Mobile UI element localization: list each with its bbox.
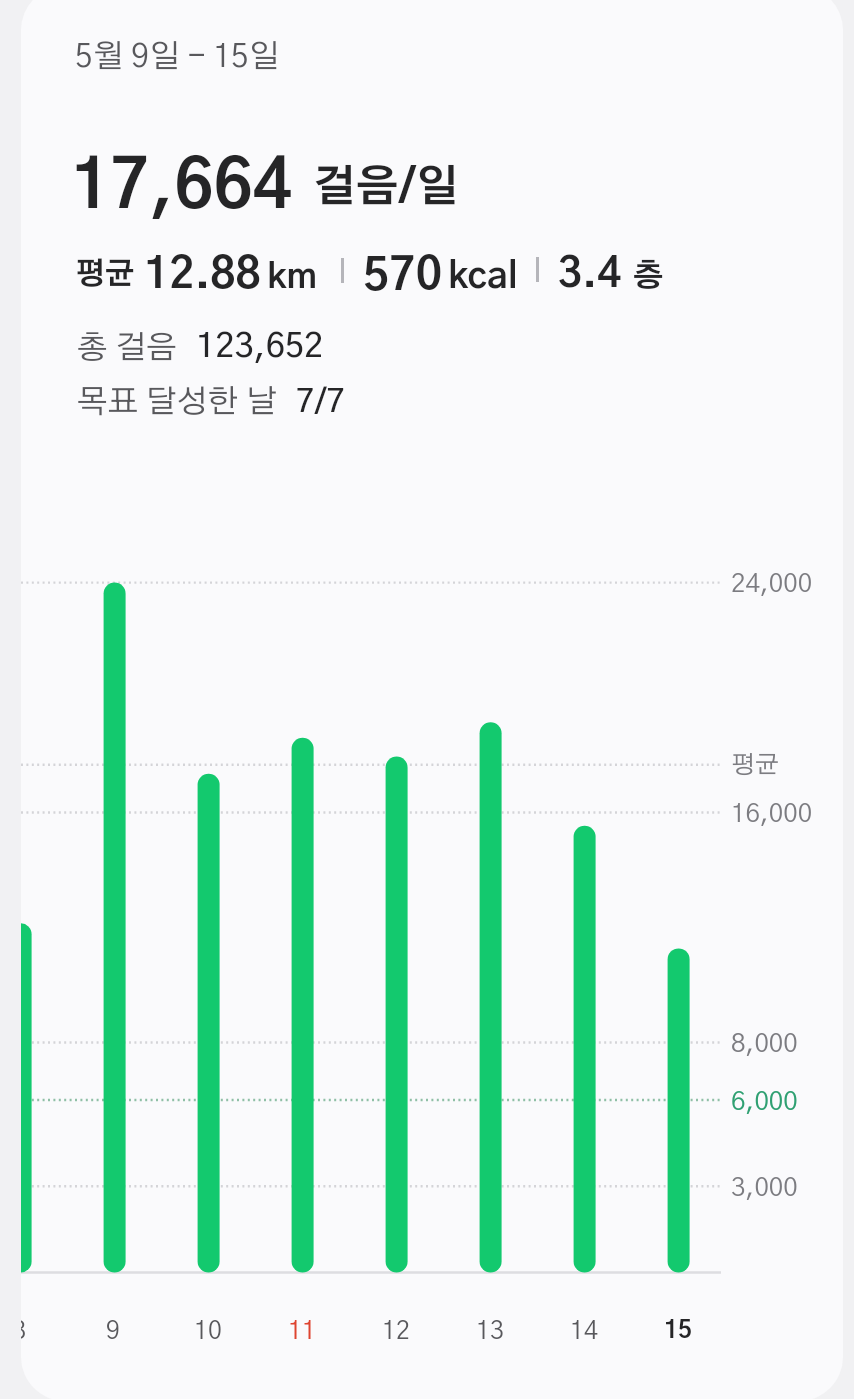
staticText: 목표 달성한 날 <box>77 386 278 418</box>
staticText: 16,000 <box>731 801 813 827</box>
staticText: 7/7 <box>296 386 346 419</box>
staticText: 8 <box>12 1319 26 1344</box>
staticText: kcal <box>448 259 518 295</box>
staticText: 평균 <box>731 753 780 778</box>
button[interactable] <box>0 0 854 1399</box>
staticText: 570 <box>363 254 443 299</box>
staticText: 걸음/일 <box>313 167 459 210</box>
staticText: 10 <box>194 1319 222 1344</box>
staticText: 15 <box>664 1319 693 1343</box>
staticText: 13 <box>476 1319 504 1344</box>
staticText: 12 <box>382 1319 410 1344</box>
staticText: 12.88 <box>144 254 261 297</box>
staticText: 9 <box>106 1319 120 1344</box>
staticText: 24,000 <box>731 571 813 597</box>
staticText: 11 <box>288 1319 316 1344</box>
staticText: 8,000 <box>731 1031 798 1057</box>
staticText: 5월 9일 - 15일 <box>75 41 280 73</box>
staticText: 14 <box>570 1319 598 1344</box>
staticText: 평균 <box>75 260 135 290</box>
staticText: 123,652 <box>196 330 324 364</box>
staticText: 17,664 <box>71 155 293 222</box>
staticText: km <box>267 260 317 295</box>
staticText: 3.4 <box>558 254 622 295</box>
staticText: 3,000 <box>731 1175 798 1201</box>
staticText: 6,000 <box>731 1089 798 1115</box>
staticText: 총 걸음 <box>77 332 178 364</box>
staticText: 층 <box>633 261 664 292</box>
